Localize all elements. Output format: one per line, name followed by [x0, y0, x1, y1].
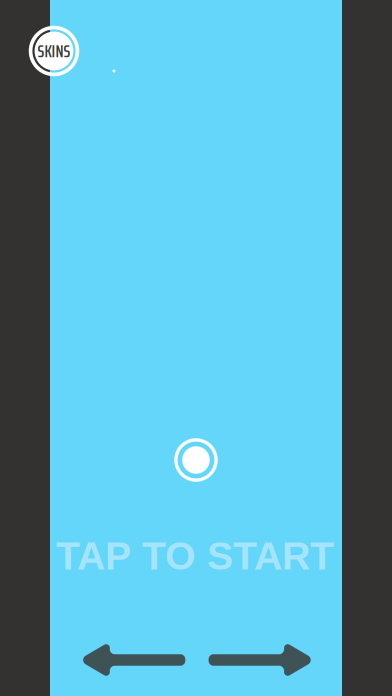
- staticText: TAP TO START: [56, 534, 334, 578]
- button[interactable]: Move left: [78, 641, 185, 678]
- staticText: SKINS: [37, 37, 70, 65]
- button[interactable]: Skins: [29, 26, 79, 76]
- button[interactable]: Move right: [209, 641, 316, 678]
